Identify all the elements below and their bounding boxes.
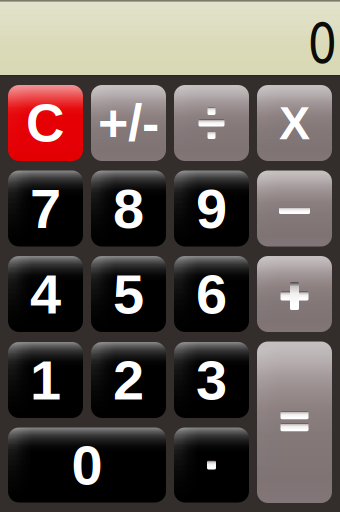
button[interactable]: 7 bbox=[8, 170, 83, 246]
staticText: 6 bbox=[196, 263, 227, 325]
button[interactable]: 1 bbox=[8, 342, 83, 418]
button[interactable]: Clear bbox=[8, 85, 83, 161]
button[interactable]: Plus bbox=[257, 256, 332, 332]
button[interactable]: 3 bbox=[174, 342, 249, 418]
button[interactable]: Divide bbox=[174, 85, 249, 161]
button[interactable]: 9 bbox=[174, 170, 249, 246]
staticText: 2 bbox=[113, 349, 144, 411]
button[interactable]: Minus bbox=[257, 170, 332, 246]
staticText: 9 bbox=[196, 177, 227, 240]
staticText: 1 bbox=[30, 349, 61, 411]
staticText: 8 bbox=[113, 177, 144, 240]
button[interactable]: 4 bbox=[8, 256, 83, 332]
button[interactable]: Multiply bbox=[257, 85, 332, 161]
staticText: 7 bbox=[30, 177, 61, 240]
staticText: 3 bbox=[196, 349, 227, 411]
button[interactable]: Decimal point bbox=[174, 427, 249, 502]
button[interactable]: 6 bbox=[174, 256, 249, 332]
button[interactable]: 5 bbox=[91, 256, 166, 332]
staticText: C bbox=[26, 93, 65, 153]
staticText: 4 bbox=[30, 263, 61, 325]
button[interactable]: 2 bbox=[91, 342, 166, 418]
staticText: 0 bbox=[71, 434, 102, 496]
button[interactable]: Equals bbox=[257, 341, 332, 503]
staticText: 0 bbox=[309, 0, 336, 79]
staticText: X bbox=[279, 97, 310, 149]
button[interactable]: 0 bbox=[8, 427, 166, 502]
staticText: +/- bbox=[98, 94, 159, 152]
staticText: 5 bbox=[113, 263, 144, 325]
button[interactable]: Plus or minus bbox=[91, 85, 166, 161]
button[interactable]: 8 bbox=[91, 170, 166, 246]
